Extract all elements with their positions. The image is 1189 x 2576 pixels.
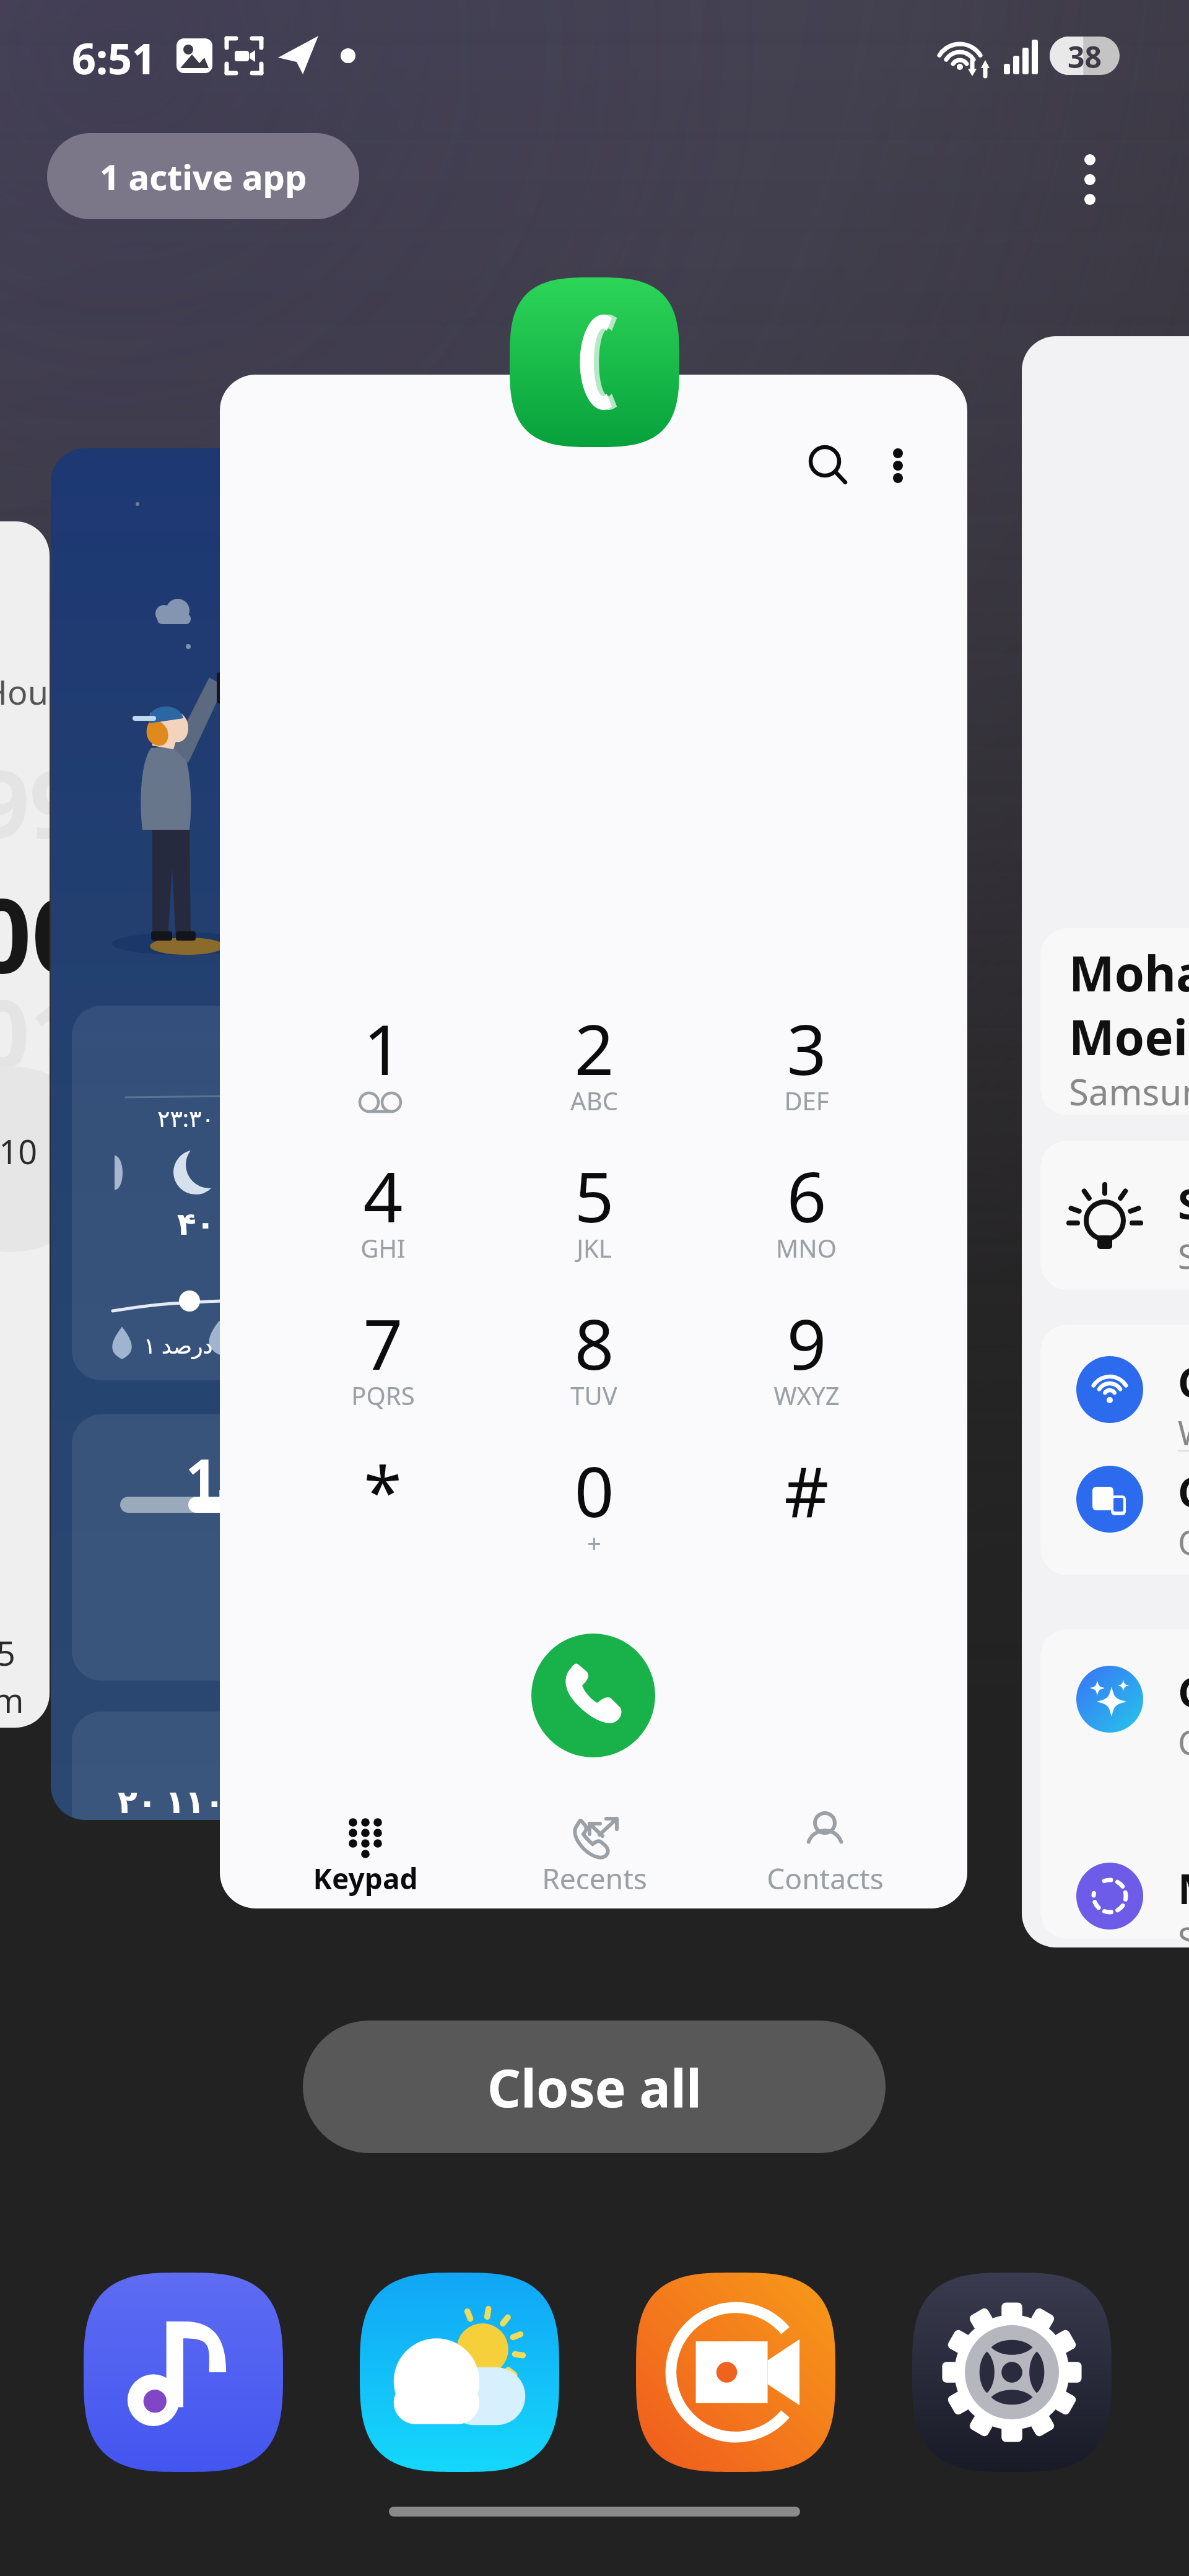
staticText: # — [784, 1443, 829, 1538]
staticText: 6 — [786, 1148, 827, 1243]
staticText: 38 — [1068, 37, 1102, 75]
staticText: Close all — [487, 2052, 702, 2122]
staticText: PQRS — [351, 1378, 415, 1412]
button[interactable]: Settings — [912, 2273, 1112, 2472]
button[interactable]: Close all — [303, 2021, 886, 2153]
button[interactable]: Connected devices — [1022, 1450, 1189, 1560]
staticText: GHI — [360, 1231, 406, 1264]
staticText: ABC — [570, 1084, 618, 1117]
button[interactable]: Phone app — [510, 277, 679, 447]
staticText: 99 — [0, 739, 50, 866]
staticText: 5 — [574, 1148, 614, 1243]
button[interactable]: Battery 38 percent — [1050, 37, 1120, 75]
staticText: Galaxy AI — [1178, 1663, 1189, 1719]
staticText: Moeidfar — [1069, 1004, 1189, 1069]
button[interactable]: 4 — [311, 1148, 454, 1284]
button[interactable]: 2 — [523, 1001, 665, 1137]
staticText: 0 — [574, 1443, 614, 1538]
button[interactable]: Screen recorder — [636, 2273, 835, 2472]
button[interactable] — [1040, 1141, 1189, 1290]
staticText: Mohammad — [1069, 940, 1189, 1006]
staticText: 4 — [363, 1148, 403, 1243]
button[interactable]: 1 — [311, 1001, 454, 1137]
staticText: MNO — [776, 1231, 837, 1264]
button[interactable]: * — [311, 1443, 454, 1579]
staticText: 9 — [786, 1295, 827, 1390]
staticText: 7 — [363, 1295, 403, 1390]
staticText: Sleep, Driving — [1178, 1916, 1189, 1947]
staticText: Call assist, Writing — [1178, 1719, 1189, 1765]
button[interactable]: 3 — [735, 1001, 878, 1137]
button[interactable]: 9 — [735, 1295, 878, 1432]
staticText: Recents — [542, 1859, 647, 1898]
staticText: 01 — [0, 968, 50, 1095]
button[interactable] — [1040, 928, 1189, 1115]
staticText: 2 — [574, 1001, 614, 1095]
staticText: ۲۰ ۱۱۰ — [118, 1778, 225, 1820]
staticText: Wi-Fi, Bluetooth — [1178, 1409, 1189, 1455]
staticText: Suggestions — [1178, 1175, 1189, 1231]
staticText: 15 — [186, 1440, 248, 1515]
staticText: m — [0, 1677, 24, 1723]
button[interactable]: 5 — [523, 1148, 665, 1284]
staticText: 8 — [574, 1295, 614, 1390]
staticText: 1 active app — [100, 153, 307, 200]
button[interactable]: ۲۳:۳۰ — [51, 448, 484, 1820]
button[interactable]: # — [735, 1443, 878, 1579]
staticText: Quick Share, Smart View — [1178, 1519, 1189, 1565]
staticText: * — [364, 1443, 402, 1538]
button[interactable]: Mohammad — [1022, 336, 1189, 1947]
staticText: ۲۳:۳۰ — [157, 1102, 214, 1134]
button[interactable]: Weather — [360, 2273, 559, 2472]
staticText: 00:10 — [0, 1128, 38, 1174]
staticText: WXYZ — [773, 1378, 840, 1412]
staticText: 1 — [363, 1001, 403, 1095]
staticText: 00 — [0, 863, 50, 1003]
button[interactable]: Modes and Routines — [1022, 1847, 1189, 1947]
button[interactable]: Music — [84, 2273, 283, 2472]
staticText: 6:51 — [72, 29, 156, 87]
staticText: ۴۰ — [177, 1206, 216, 1242]
button[interactable]: Hours — [0, 521, 50, 1728]
staticText: Samsung account — [1069, 1067, 1189, 1116]
button[interactable]: Contacts — [720, 1807, 930, 1900]
staticText: 5 — [0, 1630, 15, 1676]
staticText: 3 — [786, 1001, 827, 1095]
button[interactable]: Call — [531, 1634, 655, 1757]
staticText: DEF — [784, 1084, 829, 1117]
button[interactable]: Connections — [1022, 1340, 1189, 1450]
button[interactable]: More options — [1053, 136, 1127, 211]
button[interactable]: 1 active app — [47, 133, 359, 219]
button[interactable]: Recents — [489, 1807, 700, 1900]
staticText: Keypad — [313, 1859, 418, 1898]
staticText: Connections — [1178, 1354, 1189, 1409]
staticText: + — [587, 1526, 601, 1559]
button[interactable]: More options — [861, 424, 935, 498]
button[interactable]: Galaxy AI — [1022, 1650, 1189, 1760]
staticText: JKL — [577, 1231, 612, 1264]
button[interactable]: Keypad — [260, 1807, 471, 1900]
staticText: TUV — [570, 1378, 617, 1412]
staticText: Contacts — [767, 1859, 884, 1898]
staticText: Hours — [0, 669, 50, 715]
button[interactable]: 7 — [311, 1295, 454, 1432]
button[interactable]: 6 — [735, 1148, 878, 1284]
button[interactable]: Search — [788, 424, 862, 498]
staticText: Modes and Routines — [1178, 1860, 1189, 1916]
button[interactable]: 8 — [523, 1295, 665, 1432]
staticText: Subscribe to Samsung Care+ — [1178, 1233, 1189, 1279]
button[interactable]: 0 — [523, 1443, 665, 1579]
staticText: Connected devices — [1178, 1463, 1189, 1519]
button[interactable] — [220, 375, 967, 1908]
staticText: ۱ درصد — [144, 1330, 213, 1360]
